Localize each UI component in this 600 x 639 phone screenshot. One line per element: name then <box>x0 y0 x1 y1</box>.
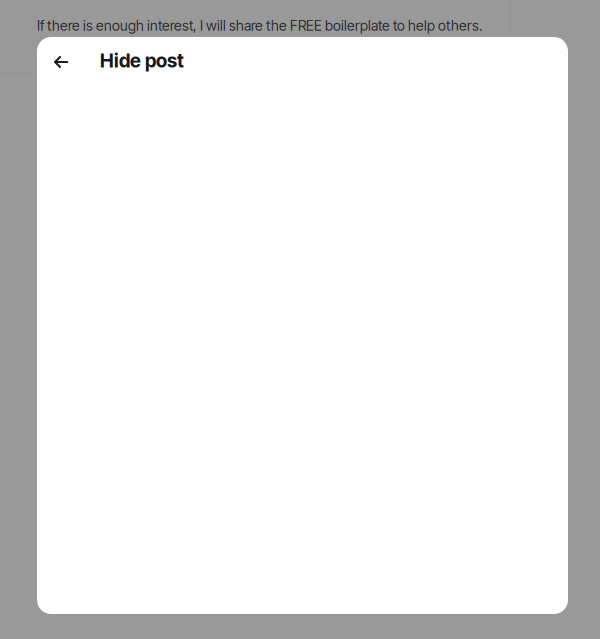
staticText: Hide post <box>100 49 184 72</box>
button[interactable]: Back <box>46 47 76 77</box>
staticText: If there is enough interest, I will shar… <box>37 17 482 34</box>
